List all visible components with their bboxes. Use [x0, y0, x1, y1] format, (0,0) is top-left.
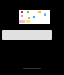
button[interactable] — [19, 10, 50, 24]
button[interactable] — [2, 30, 52, 40]
